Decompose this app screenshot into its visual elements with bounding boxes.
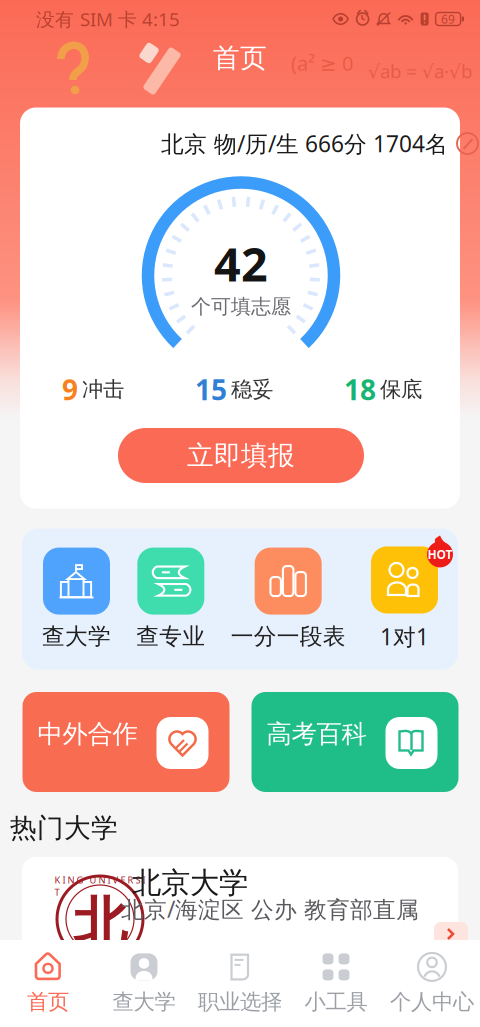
staticText: √ab = √a·√b (368, 59, 472, 83)
button[interactable]: 小工具 (288, 940, 384, 1027)
staticText: 69 (441, 11, 455, 27)
button[interactable]: 查专业 (136, 548, 205, 650)
staticText: 个可填志愿 (191, 294, 291, 319)
staticText: 15 (195, 371, 227, 408)
staticText: 北 (73, 890, 126, 956)
staticText: 小工具 (304, 989, 367, 1015)
button[interactable]: 中外合作 (22, 692, 229, 792)
staticText: 热门大学 (10, 812, 118, 844)
staticText: 查专业 (136, 623, 205, 650)
staticText: 查大学 (42, 623, 111, 650)
staticText: 18 (344, 371, 376, 408)
staticText: 没有 SIM 卡 4:15 (36, 7, 180, 31)
staticText: 首页 (27, 989, 69, 1015)
button[interactable]: 查大学 (42, 548, 111, 650)
staticText: 立即填报 (187, 439, 295, 472)
button[interactable]: 立即填报 (118, 428, 364, 483)
button[interactable]: 个人中心 (384, 940, 480, 1027)
staticText: 1对1 (380, 621, 429, 651)
button[interactable]: 职业选择 (192, 940, 288, 1027)
staticText: 查大学 (112, 989, 175, 1015)
button[interactable]: 首页 (0, 940, 96, 1027)
button[interactable]: 北京 物/历/生 666分 1704名 (151, 123, 480, 163)
staticText: 个人中心 (390, 989, 474, 1015)
staticText: 中外合作 (37, 718, 137, 749)
staticText: 北京大学 (132, 865, 248, 901)
button[interactable]: 高考百科 (251, 692, 458, 792)
staticText: 一分一段表 (231, 623, 346, 650)
button[interactable]: HOT (371, 546, 438, 651)
staticText: (a² ≥ 0 (291, 50, 353, 76)
staticText: 冲击 (82, 376, 124, 403)
button[interactable]: 北 (22, 857, 458, 967)
staticText: 职业选择 (198, 989, 282, 1015)
button[interactable]: 一分一段表 (231, 548, 346, 650)
staticText: 9 (62, 371, 78, 408)
staticText: 稳妥 (231, 376, 273, 403)
staticText: 首页 (213, 42, 267, 74)
staticText: 北京 物/历/生 666分 1704名 (161, 128, 448, 158)
staticText: 北京/海淀区 公办 教育部直属 (121, 894, 419, 924)
button[interactable]: 查大学 (96, 940, 192, 1027)
staticText: 高考百科 (266, 718, 366, 749)
staticText: 保底 (380, 376, 422, 403)
staticText: 42 (214, 232, 268, 294)
staticText: K I N G U N I V E R S I T (54, 874, 145, 898)
staticText: HOT (427, 546, 452, 562)
